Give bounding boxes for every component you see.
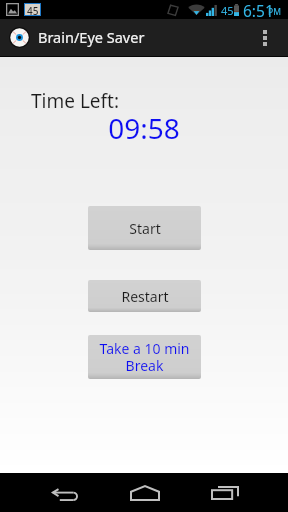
staticText: Time Left: [31, 88, 120, 114]
staticText: Take a 10 min Break [99, 339, 190, 375]
button[interactable]: Back [27, 473, 102, 512]
staticText: 6:51 [243, 0, 274, 19]
button[interactable]: Restart [88, 280, 201, 312]
button[interactable]: More options [250, 19, 280, 57]
button[interactable]: Recent apps [187, 473, 262, 512]
staticText: 45 [221, 3, 234, 18]
staticText: 45 [27, 4, 39, 15]
staticText: PM [268, 6, 281, 18]
staticText: Restart [121, 287, 169, 306]
staticText: Start [129, 219, 161, 238]
button[interactable]: Take a 10 min Break [88, 335, 201, 379]
staticText: 09:58 [0, 109, 288, 147]
staticText: Brain/Eye Saver [38, 27, 145, 47]
button[interactable]: Home [107, 473, 182, 512]
button[interactable]: Start [88, 206, 201, 250]
